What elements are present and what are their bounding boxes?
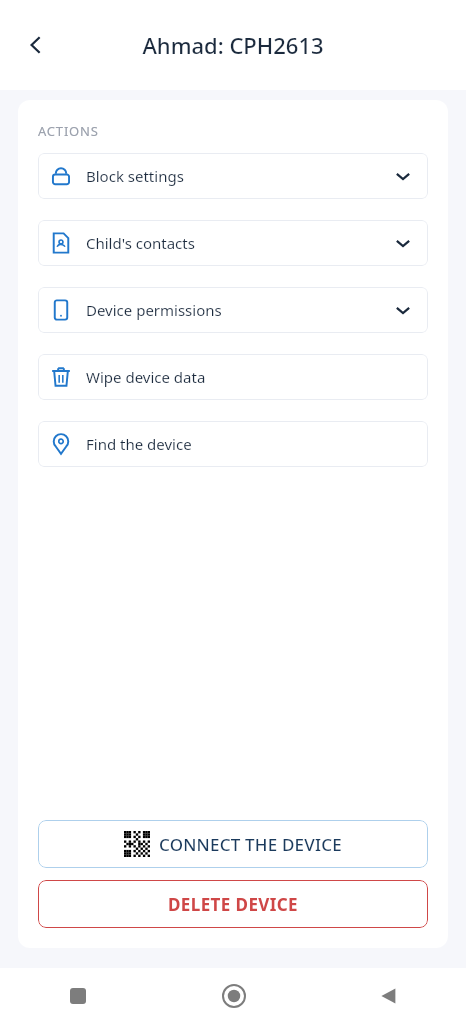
staticText: CONNECT THE DEVICE [159,833,342,856]
staticText: Find the device [86,434,192,454]
button[interactable]: Device permissions [38,287,428,333]
button[interactable]: Find the device [38,421,428,467]
staticText: Ahmad: CPH2613 [142,30,324,60]
button[interactable]: DELETE DEVICE [38,880,428,928]
staticText: Block settings [86,166,184,186]
button[interactable]: Back [10,19,62,71]
staticText: Wipe device data [86,367,206,387]
staticText: Device permissions [86,300,222,320]
button[interactable]: CONNECT THE DEVICE [38,820,428,868]
staticText: DELETE DEVICE [168,893,298,916]
button[interactable]: Back [311,968,466,1024]
button[interactable]: Home [156,968,311,1024]
staticText: ACTIONS [38,122,99,140]
button[interactable]: Child's contacts [38,220,428,266]
staticText: Child's contacts [86,233,195,253]
button[interactable]: Block settings [38,153,428,199]
button[interactable]: Recent apps [0,968,156,1024]
button[interactable]: Wipe device data [38,354,428,400]
